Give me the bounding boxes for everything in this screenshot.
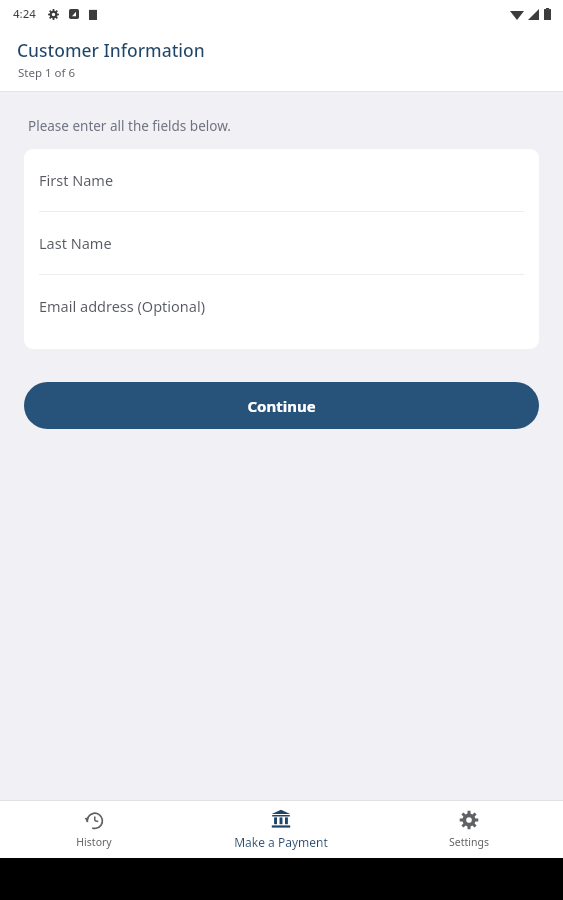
staticText: Continue [247, 396, 316, 416]
button[interactable]: First Name [24, 149, 539, 211]
staticText: Please enter all the fields below. [28, 117, 231, 135]
button[interactable]: Settings [375, 801, 563, 858]
staticText: Step 1 of 6 [18, 65, 76, 81]
staticText: Email address (Optional) [39, 296, 206, 316]
button[interactable]: Email address (Optional) [24, 275, 539, 337]
button[interactable]: Continue [24, 382, 539, 429]
staticText: Last Name [39, 233, 112, 253]
button[interactable]: History [0, 801, 187, 858]
staticText: 4:24 [13, 6, 36, 22]
button[interactable]: Make a Payment [187, 801, 375, 858]
staticText: Make a Payment [234, 834, 328, 850]
staticText: Settings [449, 835, 489, 849]
button[interactable]: Last Name [24, 212, 539, 274]
staticText: Customer Information [17, 38, 205, 62]
staticText: First Name [39, 170, 114, 190]
staticText: History [76, 835, 112, 849]
